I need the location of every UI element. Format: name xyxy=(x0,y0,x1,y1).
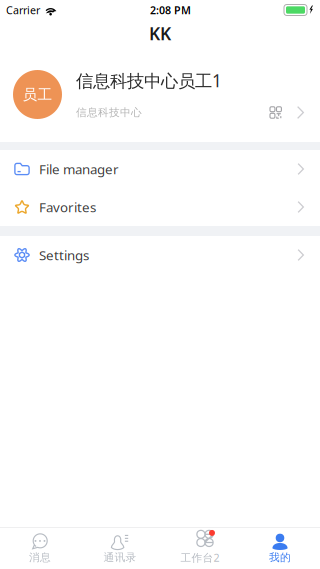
staticText: Favorites xyxy=(39,198,96,216)
staticText: KK xyxy=(149,22,171,45)
staticText: 员工 xyxy=(22,85,52,103)
button[interactable]: Settings xyxy=(0,236,320,274)
button[interactable]: 员工 xyxy=(0,47,320,142)
staticText: Carrier xyxy=(6,3,40,17)
staticText: 消息 xyxy=(29,551,51,564)
staticText: 我的 xyxy=(269,551,291,564)
staticText: 通讯录 xyxy=(103,551,136,564)
button[interactable]: 我的 xyxy=(240,528,320,569)
button[interactable]: 消息 xyxy=(0,528,80,569)
staticText: Settings xyxy=(39,246,89,264)
staticText: 信息科技中心 xyxy=(76,106,142,119)
staticText: 信息科技中心员工1 xyxy=(76,69,222,92)
button[interactable]: 工作台2 xyxy=(160,528,240,569)
button[interactable]: Favorites xyxy=(0,188,320,226)
staticText: 2:08 PM xyxy=(150,3,191,17)
staticText: File manager xyxy=(39,160,119,178)
button[interactable]: File manager xyxy=(0,150,320,188)
staticText: 工作台2 xyxy=(180,550,219,565)
button[interactable]: 通讯录 xyxy=(80,528,160,569)
